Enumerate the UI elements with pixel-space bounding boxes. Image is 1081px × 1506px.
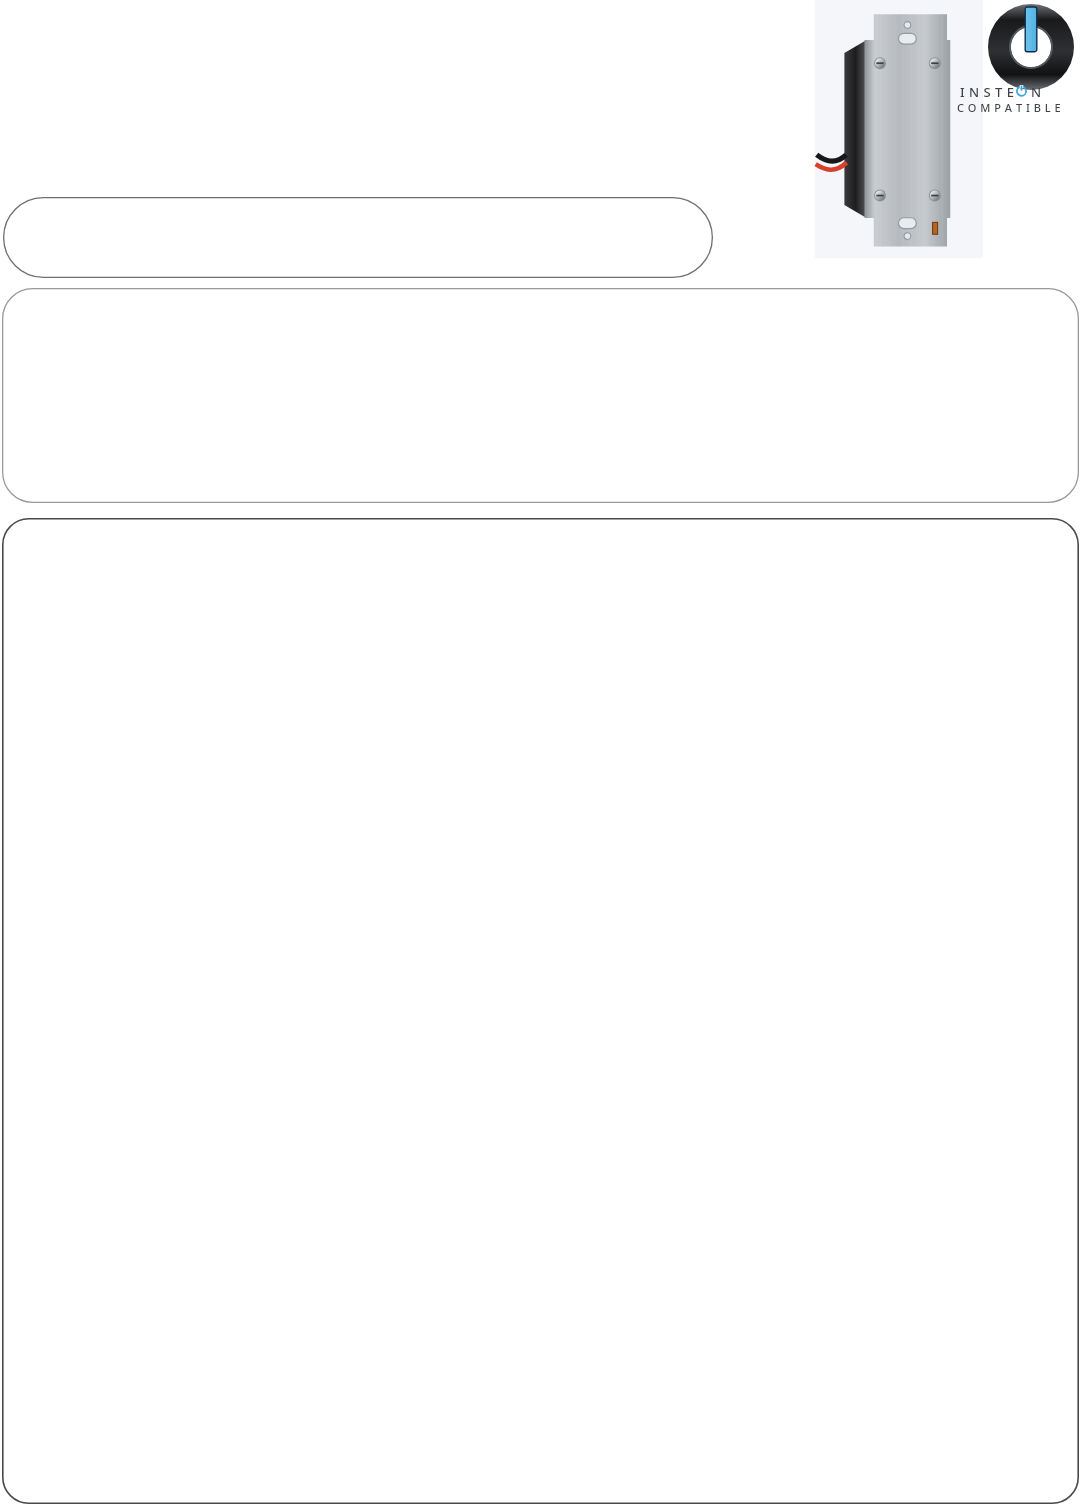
button[interactable]: Product photo <box>815 0 983 258</box>
staticText: N <box>1031 83 1042 101</box>
staticText: C O M P A T I B L E <box>957 100 1062 115</box>
button[interactable]: Summary panel <box>2 288 1079 503</box>
button[interactable]: Title field <box>3 197 713 278</box>
other: INSTEON logo <box>988 4 1074 90</box>
staticText: I N S T E <box>960 83 1015 101</box>
button[interactable]: Content panel <box>2 518 1079 1504</box>
